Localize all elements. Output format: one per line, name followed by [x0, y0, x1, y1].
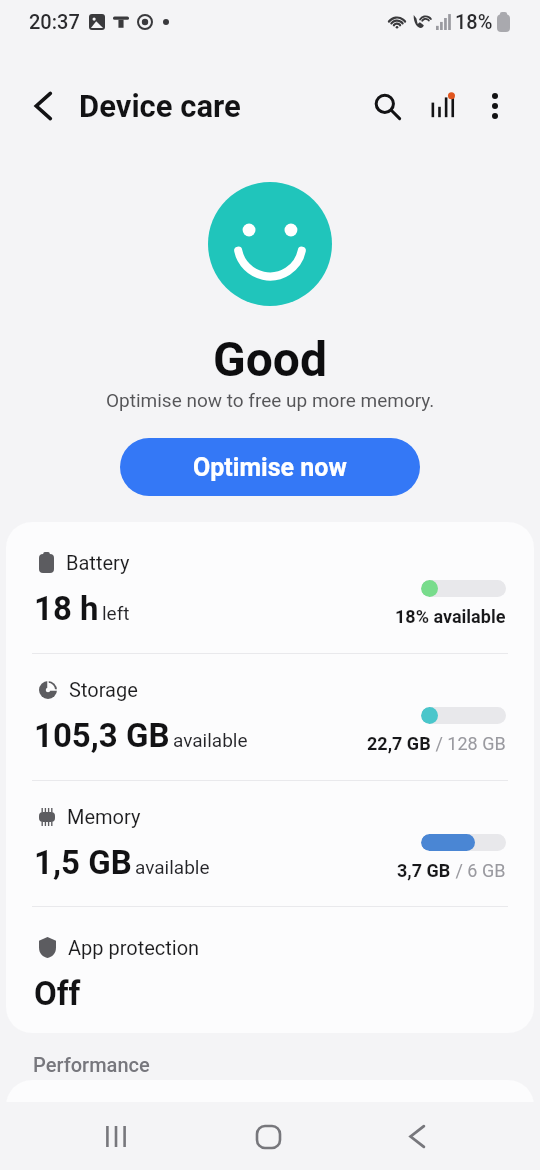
staticText: Storage — [69, 678, 138, 701]
staticText: 105,3 GB — [34, 716, 170, 755]
staticText: / 128 GB — [431, 733, 506, 754]
staticText: available — [135, 856, 210, 878]
staticText: Off — [34, 974, 81, 1013]
staticText: left — [102, 602, 130, 624]
staticText: / 6 GB — [451, 860, 506, 881]
button[interactable]: Usage statistics — [417, 80, 469, 132]
staticText: App protection — [68, 936, 200, 959]
button[interactable]: Back — [384, 1103, 450, 1169]
staticText: Performance — [33, 1053, 150, 1076]
button[interactable]: Search — [361, 80, 413, 132]
staticText: Device care — [79, 88, 241, 124]
staticText: Memory — [67, 805, 141, 828]
button[interactable]: Memory — [6, 776, 534, 903]
staticText: 18 h — [34, 589, 99, 628]
staticText: Battery — [66, 551, 130, 574]
button[interactable]: Back — [19, 82, 67, 130]
staticText: 3,7 GB — [397, 860, 451, 881]
staticText: Good — [213, 331, 328, 387]
staticText: 20:37 — [29, 10, 80, 33]
button[interactable]: More options — [469, 80, 521, 132]
staticText: 1,5 GB — [34, 843, 132, 882]
staticText: 22,7 GB — [367, 733, 431, 754]
button[interactable]: Storage — [6, 649, 534, 776]
staticText: Optimise now to free up more memory. — [106, 389, 435, 411]
staticText: 18% — [455, 10, 493, 33]
button[interactable]: App protection — [6, 907, 534, 1033]
button[interactable]: Recents — [83, 1103, 149, 1169]
staticText: Optimise now — [193, 453, 347, 482]
staticText: 18% available — [395, 606, 506, 627]
staticText: available — [173, 729, 248, 751]
button[interactable]: Home — [235, 1104, 301, 1170]
button[interactable]: Battery — [6, 522, 534, 649]
button[interactable]: Optimise now — [120, 438, 420, 496]
